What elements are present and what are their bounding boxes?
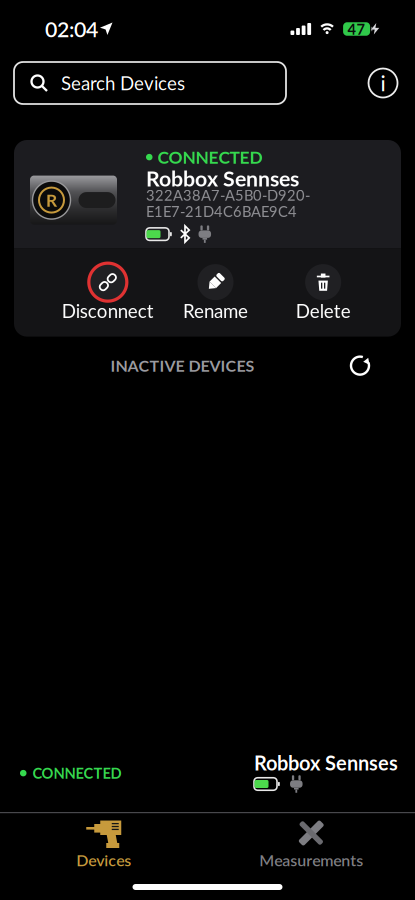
button[interactable]: Devices	[0, 817, 207, 867]
button[interactable]: Refresh	[349, 355, 371, 377]
staticText: Measurements	[259, 852, 363, 867]
staticText: Robbox Sennses	[146, 168, 299, 188]
staticText: 47	[348, 22, 366, 36]
staticText: CONNECTED	[32, 766, 121, 780]
button[interactable]: Info	[368, 68, 398, 98]
staticText: 322A38A7-A5B0-D920-	[146, 188, 310, 202]
staticText: 02:04	[45, 19, 98, 39]
button[interactable]: Disconnect	[54, 262, 162, 320]
staticText: Rename	[183, 302, 248, 320]
button[interactable]: Measurements	[207, 817, 415, 867]
button[interactable]: Delete	[269, 262, 377, 320]
staticText: Delete	[296, 302, 351, 320]
staticText: i	[380, 73, 385, 93]
staticText: Devices	[76, 852, 131, 867]
staticText: Disconnect	[62, 302, 154, 320]
button[interactable]: Rename	[162, 262, 269, 320]
staticText: E1E7-21D4C6BAE9C4	[146, 204, 297, 218]
staticText: CONNECTED	[157, 149, 262, 165]
staticText: Robbox Sennses	[254, 753, 398, 772]
button[interactable]: Search Devices	[14, 62, 286, 104]
staticText: INACTIVE DEVICES	[110, 358, 254, 373]
staticText: Search Devices	[61, 74, 185, 92]
staticText: R	[46, 192, 57, 208]
